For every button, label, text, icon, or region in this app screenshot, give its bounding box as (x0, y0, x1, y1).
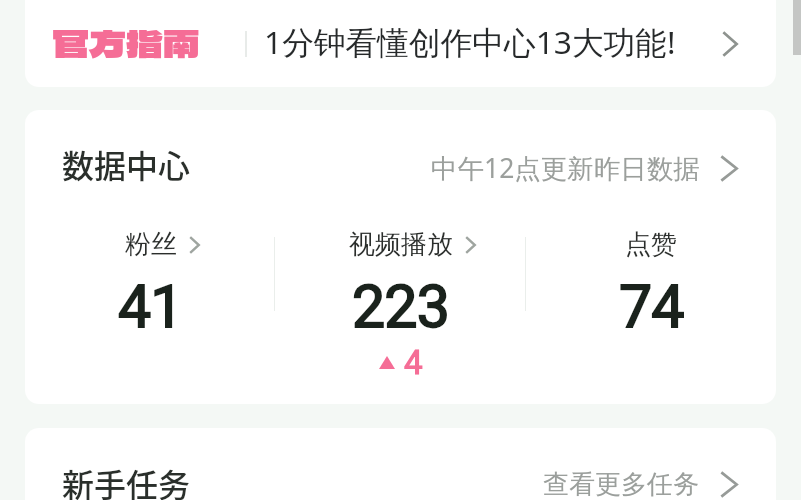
button[interactable]: 官方指南 (25, 0, 776, 87)
button[interactable]: 粉丝 (25, 228, 276, 388)
button[interactable]: 视频播放 (276, 228, 526, 388)
staticText: 1分钟看懂创作中心13大功能! (264, 20, 676, 63)
staticText: 视频播放 (349, 228, 453, 261)
button[interactable]: 点赞 (526, 228, 776, 388)
staticText: 点赞 (625, 228, 677, 261)
staticText: 数据中心 (62, 141, 191, 187)
staticText: 查看更多任务 (543, 468, 699, 500)
staticText: 新手任务 (62, 460, 191, 500)
staticText: 中午12点更新昨日数据 (431, 150, 700, 186)
staticText: 官方指南 (52, 15, 200, 69)
staticText: 41 (118, 272, 183, 341)
button[interactable]: 查看更多任务 (543, 468, 738, 500)
staticText: 223 (352, 272, 450, 341)
staticText: 粉丝 (125, 228, 177, 261)
button[interactable]: 中午12点更新昨日数据 (431, 150, 738, 186)
other: 查看官方指南 (722, 31, 738, 57)
staticText: 74 (619, 272, 684, 341)
staticText: 4 (404, 343, 423, 382)
